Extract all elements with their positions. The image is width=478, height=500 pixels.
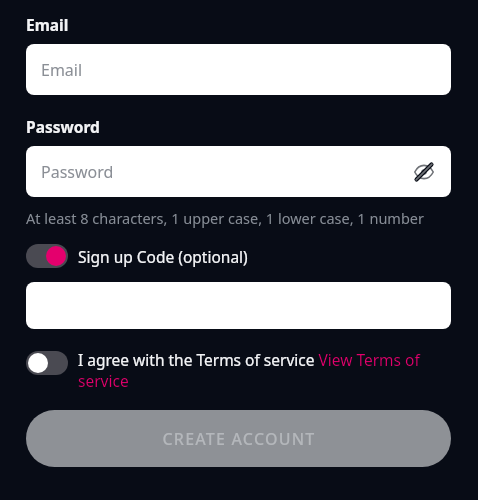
button[interactable]: Off bbox=[26, 349, 451, 392]
staticText: Password bbox=[41, 161, 114, 183]
staticText: Email bbox=[41, 59, 83, 81]
button[interactable]: Show password bbox=[411, 159, 437, 185]
staticText: At least 8 characters, 1 upper case, 1 l… bbox=[26, 208, 451, 228]
button[interactable]: Password bbox=[26, 146, 451, 197]
staticText: CREATE ACCOUNT bbox=[162, 428, 316, 450]
button[interactable]: CREATE ACCOUNT bbox=[26, 410, 451, 467]
button[interactable]: Off bbox=[26, 351, 68, 375]
staticText: Sign up Code (optional) bbox=[78, 246, 248, 267]
staticText: I agree with the Terms of service View T… bbox=[78, 349, 451, 392]
button[interactable]: On bbox=[26, 244, 68, 268]
button[interactable] bbox=[26, 282, 451, 329]
staticText: Password bbox=[26, 116, 100, 137]
staticText: Email bbox=[26, 14, 69, 35]
button[interactable]: Email bbox=[26, 44, 451, 95]
button[interactable]: On bbox=[26, 244, 451, 268]
